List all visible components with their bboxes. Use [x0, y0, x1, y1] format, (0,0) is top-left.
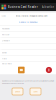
staticText: Note: [1, 57, 6, 60]
button[interactable]: Skype: [0, 49, 56, 55]
staticText: Business card to upload as attachment au…: [2, 79, 54, 85]
staticText: LinkedIn: [1, 39, 9, 42]
staticText: Voice note: [1, 62, 11, 65]
button[interactable]: Voice note: [0, 61, 56, 74]
button[interactable]: Save: [30, 88, 41, 95]
staticText: Subscribe: [41, 5, 54, 9]
staticText: Facebook: [1, 27, 9, 30]
staticText: Skype: [1, 51, 6, 54]
button[interactable]: Cancel: [12, 88, 23, 95]
staticText: Twitter: [1, 33, 9, 36]
button[interactable]: Web: [0, 12, 56, 25]
button[interactable]: [0, 43, 56, 49]
button[interactable]: LinkedIn: [0, 37, 56, 43]
button[interactable]: Facebook: [0, 25, 56, 31]
button[interactable]: Note: [0, 55, 56, 61]
staticText: Save: [33, 90, 37, 93]
staticText: Cancel: [14, 90, 20, 93]
button[interactable]: Twitter: [0, 31, 56, 37]
staticText: Donate to ZohoCRM: [18, 20, 37, 23]
staticText: Web: [1, 14, 5, 17]
staticText: Business Card Reader: [8, 5, 38, 9]
staticText: http://www.megatelcomp.com: [15, 14, 47, 17]
